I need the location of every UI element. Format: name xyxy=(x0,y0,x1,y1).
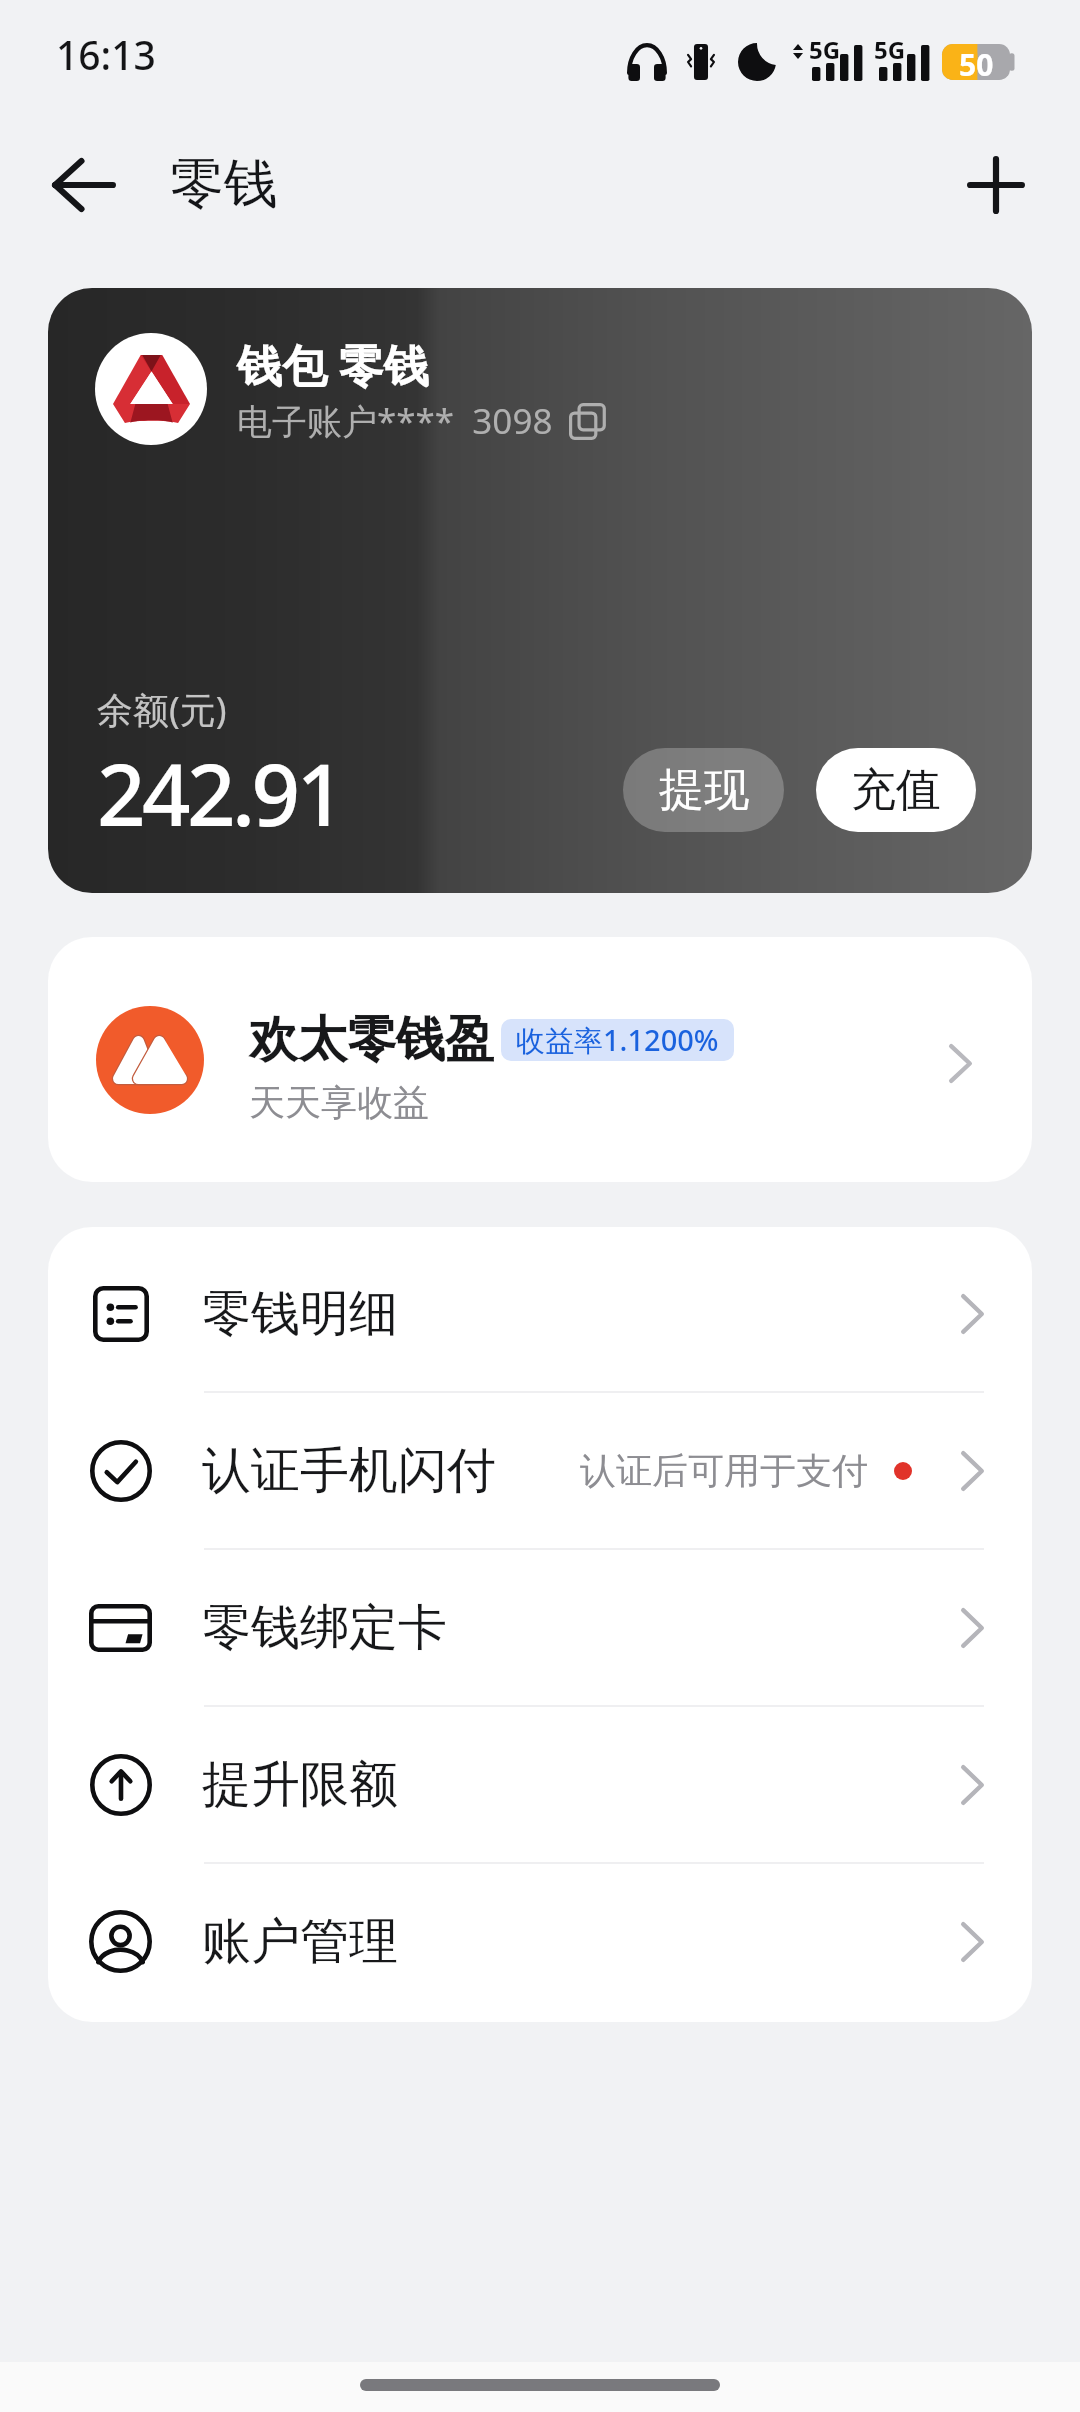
staticText: 零钱明细 xyxy=(202,1283,398,1345)
button[interactable]: 欢太零钱盈 xyxy=(48,937,1032,1182)
staticText: 零钱 xyxy=(170,150,278,218)
staticText: 5G xyxy=(874,33,906,66)
staticText: 50 xyxy=(959,44,994,80)
staticText: 16:13 xyxy=(56,28,156,81)
staticText: 收益率1.1200% xyxy=(516,1020,719,1060)
button[interactable]: 账户管理 xyxy=(48,1864,1032,2019)
staticText: 认证手机闪付 xyxy=(202,1440,496,1502)
staticText: 充值 xyxy=(851,762,941,819)
staticText: 5G xyxy=(809,33,841,66)
staticText: 提现 xyxy=(659,762,749,819)
staticText: 提升限额 xyxy=(202,1754,398,1816)
staticText: 242.91 xyxy=(97,735,342,851)
button[interactable]: 提升限额 xyxy=(48,1707,1032,1862)
staticText: 余额(元) xyxy=(97,685,227,734)
button[interactable]: 钱包 零钱 xyxy=(48,288,1032,893)
staticText: 电子账户**** 3098 xyxy=(237,397,553,445)
staticText: 零钱绑定卡 xyxy=(202,1597,447,1659)
button[interactable]: 提现 xyxy=(623,748,784,832)
button[interactable]: 充值 xyxy=(816,748,976,832)
button[interactable]: 认证手机闪付 xyxy=(48,1393,1032,1548)
button[interactable]: Back xyxy=(36,137,132,233)
button[interactable]: Add xyxy=(948,137,1044,233)
button[interactable]: 零钱明细 xyxy=(48,1236,1032,1391)
staticText: 天天享收益 xyxy=(249,1080,429,1125)
staticText: 钱包 零钱 xyxy=(237,334,429,395)
staticText: 认证后可用于支付 xyxy=(580,1448,868,1493)
staticText: 账户管理 xyxy=(202,1911,398,1973)
button[interactable]: 零钱绑定卡 xyxy=(48,1550,1032,1705)
staticText: 欢太零钱盈 xyxy=(249,1009,494,1071)
